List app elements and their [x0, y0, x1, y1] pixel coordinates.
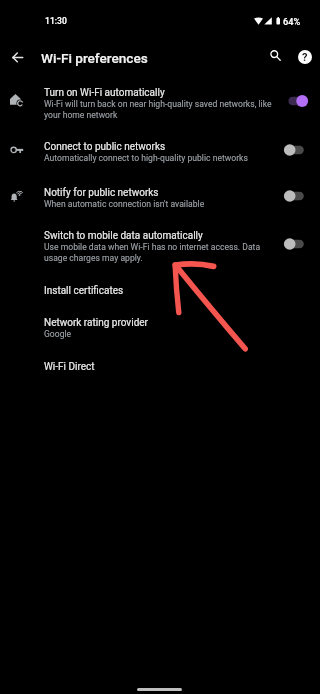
staticText: 11:30 [45, 16, 67, 26]
staticText: Google [44, 328, 72, 339]
button[interactable]: Turn on Wi-Fi automatically [0, 81, 320, 135]
button[interactable]: Notify for public networks [0, 181, 320, 225]
staticText: Connect to public networks [44, 140, 166, 152]
staticText: When automatic connection isn't availabl… [44, 198, 205, 209]
staticText: Turn on Wi-Fi automatically [44, 86, 165, 98]
button[interactable]: Off [283, 141, 309, 159]
button[interactable]: Install certificates [0, 277, 320, 310]
button[interactable]: Wi-Fi Direct [0, 353, 320, 386]
staticText: Network rating provider [44, 316, 148, 328]
staticText: 64% [283, 16, 301, 27]
button[interactable]: Navigate up [3, 39, 39, 75]
button[interactable]: Network rating provider [0, 311, 320, 355]
staticText: Switch to mobile data automatically [44, 229, 203, 241]
button[interactable]: Off [283, 187, 309, 205]
staticText: Notify for public networks [44, 186, 159, 198]
staticText: Wi-Fi preferences [41, 50, 148, 66]
button[interactable]: Connect to public networks [0, 135, 320, 179]
staticText: Wi-Fi will turn back on near high-qualit… [44, 98, 276, 120]
staticText: ? [302, 51, 308, 64]
staticText: Automatically connect to high-quality pu… [44, 152, 248, 163]
staticText: Use mobile data when Wi-Fi has no intern… [44, 241, 276, 263]
button[interactable]: Help [287, 39, 320, 75]
button[interactable]: Off [283, 235, 309, 253]
button[interactable]: Switch to mobile data automatically [0, 224, 320, 278]
staticText: Wi-Fi Direct [44, 360, 95, 372]
staticText: Install certificates [44, 284, 124, 296]
button[interactable]: On [283, 92, 309, 110]
button[interactable]: Search [256, 38, 292, 74]
